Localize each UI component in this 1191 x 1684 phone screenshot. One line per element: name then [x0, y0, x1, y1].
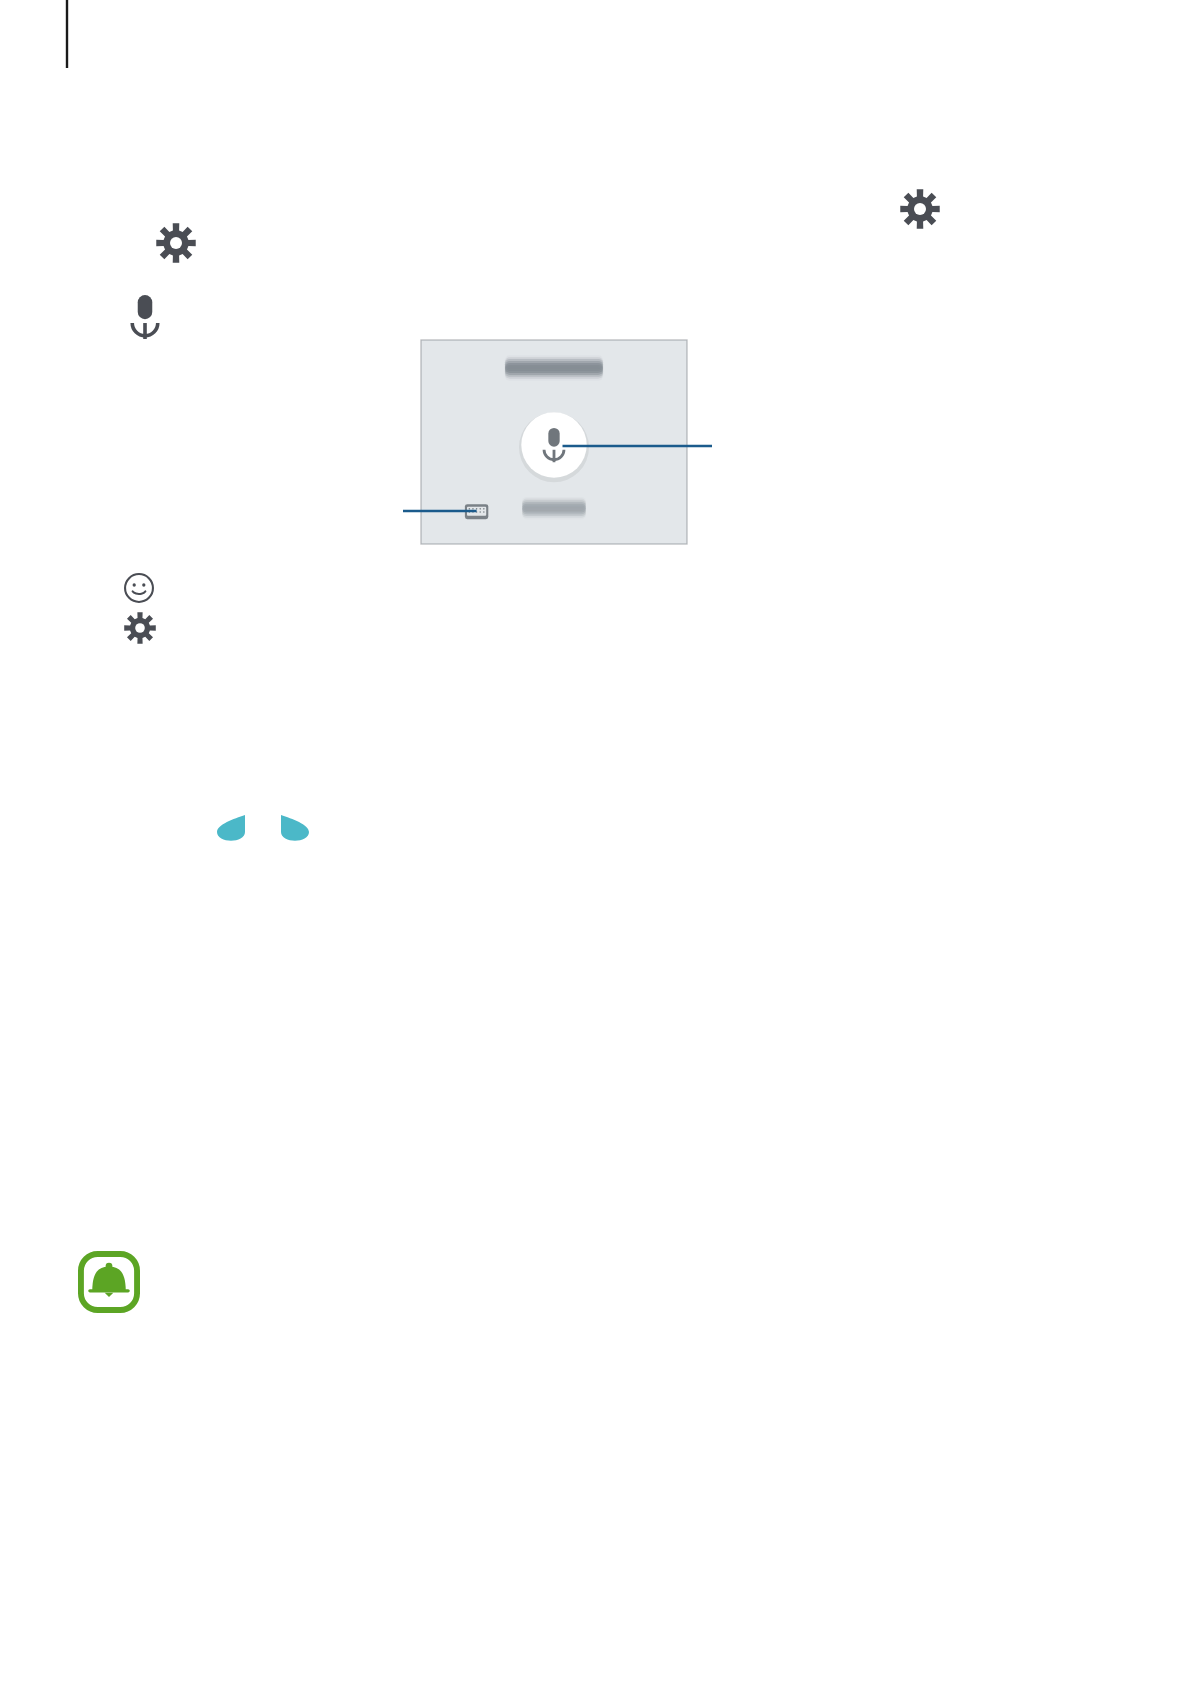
- button[interactable]: Settings: [900, 188, 942, 230]
- button[interactable]: Voice input screen: [421, 340, 687, 544]
- button[interactable]: Keyboard settings: [121, 609, 159, 647]
- button[interactable]: Settings: [156, 222, 198, 264]
- button[interactable]: Voice input: [125, 294, 165, 342]
- button[interactable]: Emoji: [121, 569, 157, 607]
- button[interactable]: Note: [78, 1251, 140, 1313]
